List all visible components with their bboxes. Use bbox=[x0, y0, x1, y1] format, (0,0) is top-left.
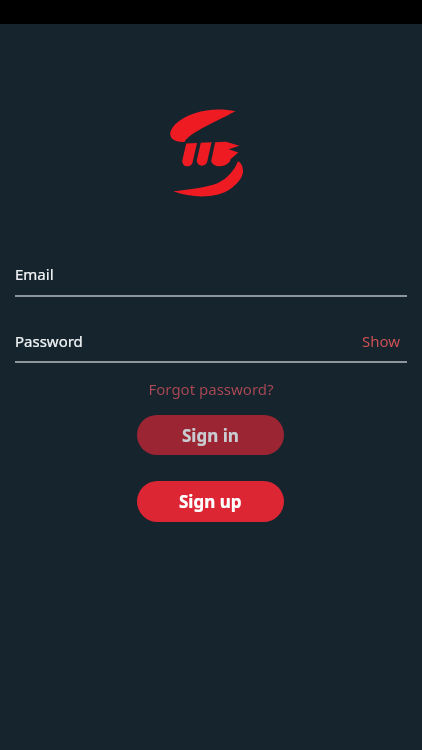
button[interactable]: Sign up bbox=[137, 481, 284, 522]
staticText: Email bbox=[15, 264, 54, 284]
staticText: Sign in bbox=[182, 424, 239, 447]
staticText: Forgot password? bbox=[148, 379, 274, 399]
button[interactable]: Forgot password? bbox=[0, 379, 422, 399]
staticText: Password bbox=[15, 331, 83, 351]
button[interactable]: Show bbox=[352, 321, 411, 361]
staticText: Show bbox=[362, 331, 401, 351]
staticText: Sign up bbox=[179, 490, 242, 513]
button[interactable]: Sign in bbox=[137, 415, 284, 455]
